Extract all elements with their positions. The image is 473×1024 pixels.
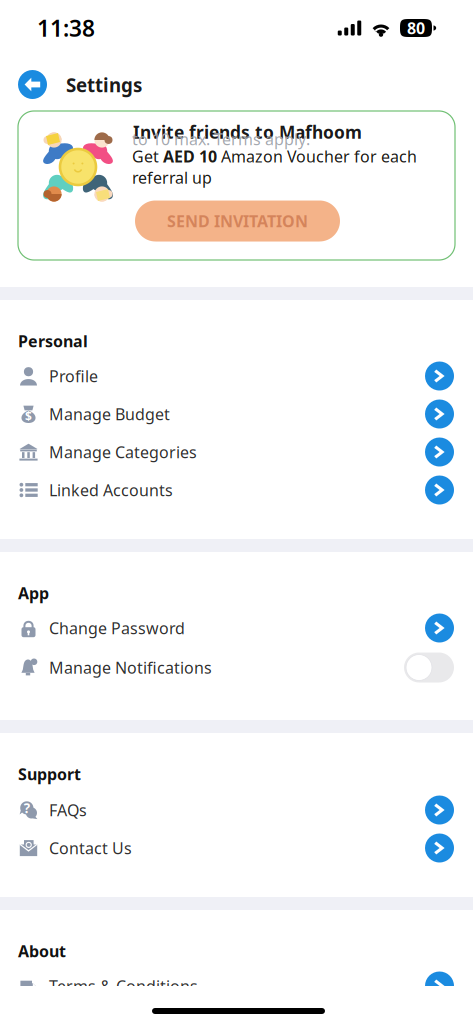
staticText: About: [18, 940, 66, 962]
staticText: FAQs: [49, 799, 87, 821]
staticText: SEND INVITATION: [167, 210, 308, 232]
staticText: to 10 max. Terms apply.: [132, 128, 310, 150]
staticText: Manage Categories: [49, 441, 197, 463]
button[interactable]: Terms & Conditions: [0, 971, 473, 1001]
staticText: Linked Accounts: [49, 479, 173, 501]
button[interactable]: Manage Categories: [0, 437, 473, 467]
staticText: 11:38: [37, 13, 95, 43]
button[interactable]: SEND INVITATION: [135, 200, 340, 241]
staticText: Change Password: [49, 617, 185, 639]
staticText: Manage Notifications: [49, 657, 212, 678]
staticText: ?: [24, 799, 30, 817]
staticText: Manage Budget: [49, 403, 170, 425]
staticText: Support: [18, 763, 81, 785]
button[interactable]: Linked Accounts: [0, 475, 473, 505]
button[interactable]: $: [0, 399, 473, 429]
button[interactable]: Manage Notifications: [0, 652, 473, 683]
button[interactable]: ?: [0, 795, 473, 825]
staticText: App: [18, 582, 49, 604]
staticText: Contact Us: [49, 837, 132, 859]
staticText: Terms & Conditions: [49, 975, 198, 997]
staticText: 80: [407, 17, 425, 39]
staticText: $: [25, 408, 32, 424]
button[interactable]: Back: [18, 70, 47, 99]
staticText: Profile: [49, 365, 98, 387]
staticText: Personal: [18, 330, 88, 352]
staticText: Settings: [66, 73, 142, 97]
button[interactable]: Change Password: [0, 613, 473, 643]
button[interactable]: Contact Us: [0, 833, 473, 863]
staticText: Invite friends to Mafhoom: [133, 120, 362, 143]
button[interactable]: Profile: [0, 361, 473, 391]
staticText: Get AED 10 Amazon Voucher for each refer…: [132, 146, 417, 188]
